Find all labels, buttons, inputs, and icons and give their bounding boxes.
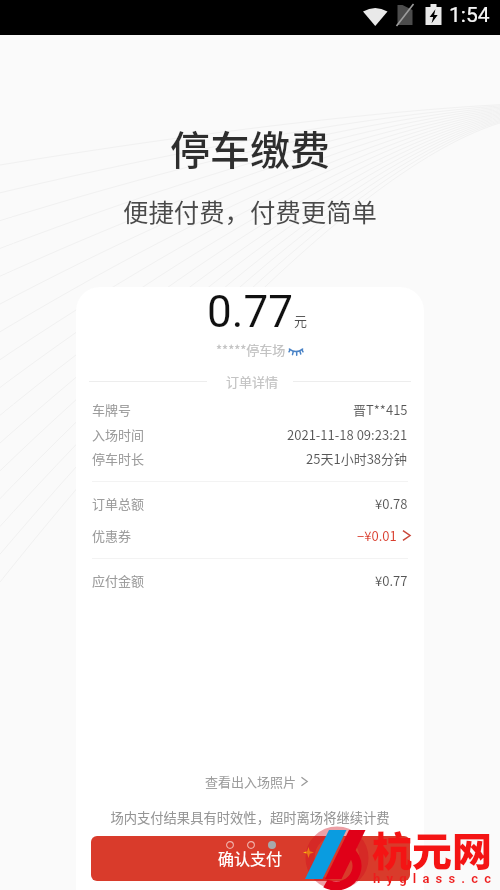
staticText: ¥0.77 xyxy=(375,571,408,590)
staticText: 晋T**415 xyxy=(353,400,408,419)
staticText: 0.77 xyxy=(0,286,500,338)
staticText: 查看出入场照片 xyxy=(205,772,297,791)
staticText: 场内支付结果具有时效性，超时离场将继续计费 xyxy=(0,808,500,827)
staticText: 车牌号 xyxy=(92,400,132,419)
staticText: 便捷付费，付费更简单 xyxy=(0,193,500,230)
staticText: 2021-11-18 09:23:21 xyxy=(287,425,408,444)
staticText: 订单总额 xyxy=(92,494,145,513)
staticText: −¥0.01 xyxy=(357,526,397,545)
staticText: 订单详情 xyxy=(2,372,500,391)
button[interactable]: 查看出入场照片 xyxy=(199,768,315,795)
staticText: 停车缴费 xyxy=(0,119,500,177)
button[interactable]: 确认支付 xyxy=(91,836,410,881)
staticText: 杭元网 xyxy=(372,820,492,878)
staticText: ¥0.78 xyxy=(375,494,408,513)
staticText: 应付金额 xyxy=(92,571,145,590)
staticText: 优惠券 xyxy=(92,526,132,545)
button[interactable]: Show parking lot name xyxy=(289,344,303,358)
staticText: *****停车场 xyxy=(216,340,286,359)
staticText: hyglass.cc xyxy=(373,871,498,886)
staticText: 1:54 xyxy=(449,3,490,28)
staticText: 确认支付 xyxy=(218,846,283,869)
staticText: 25天1小时38分钟 xyxy=(306,449,408,468)
staticText: 元 xyxy=(294,311,308,330)
staticText: 停车时长 xyxy=(92,449,145,468)
staticText: 入场时间 xyxy=(92,425,145,444)
